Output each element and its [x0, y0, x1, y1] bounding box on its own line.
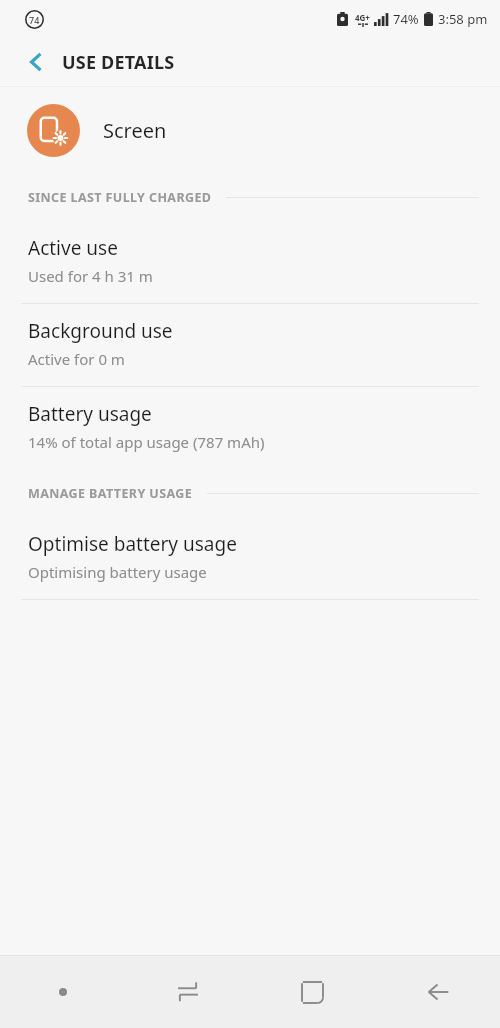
staticText: 4G+ [355, 12, 370, 23]
button[interactable]: Recent apps [125, 956, 250, 1028]
staticText: Active for 0 m [28, 349, 125, 369]
staticText: 14% of total app usage (787 mAh) [28, 432, 265, 452]
button[interactable]: Notification indicator [0, 956, 125, 1028]
staticText: Battery usage [28, 401, 152, 427]
staticText: 3:58 pm [438, 10, 488, 28]
staticText: Screen [103, 117, 167, 144]
button[interactable]: Active use [0, 221, 500, 303]
staticText: 74 [29, 14, 40, 26]
staticText: USE DETAILS [62, 50, 175, 75]
button[interactable]: Navigate up [14, 40, 58, 84]
staticText: Optimise battery usage [28, 531, 237, 557]
button[interactable]: Home [250, 956, 375, 1028]
staticText: Background use [28, 318, 173, 344]
staticText: Optimising battery usage [28, 562, 207, 582]
button[interactable]: Screen [0, 87, 500, 173]
staticText: Used for 4 h 31 m [28, 266, 153, 286]
button[interactable]: Optimise battery usage [0, 517, 500, 599]
staticText: Active use [28, 235, 118, 261]
button[interactable]: Battery usage [0, 387, 500, 469]
staticText: MANAGE BATTERY USAGE [28, 485, 193, 502]
staticText: SINCE LAST FULLY CHARGED [28, 189, 212, 206]
button[interactable]: Background use [0, 304, 500, 386]
staticText: 74% [393, 10, 419, 28]
button[interactable]: Back [375, 956, 500, 1028]
